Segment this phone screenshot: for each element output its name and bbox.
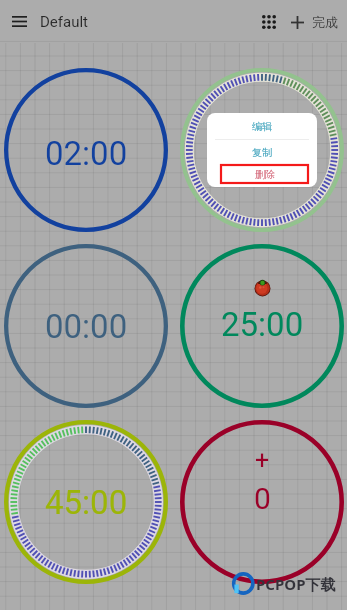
staticText: 复制	[252, 146, 272, 159]
staticText: +	[255, 446, 270, 475]
button[interactable]: 02:00	[4, 68, 168, 232]
button[interactable]: +	[180, 420, 344, 584]
staticText: 45:00	[45, 483, 128, 522]
staticText: 完成	[312, 14, 338, 30]
button[interactable]: 编辑	[180, 68, 344, 232]
staticText: 0	[254, 481, 271, 516]
staticText: 删除	[255, 168, 275, 181]
button[interactable]: Add timer	[284, 9, 310, 35]
staticText: PCPOP下载	[256, 574, 336, 594]
staticText: 02:00	[45, 134, 128, 173]
button[interactable]: 45:00	[4, 420, 168, 584]
staticText: 编辑	[252, 120, 272, 133]
staticText: 00:00	[45, 307, 128, 346]
button[interactable]: 25:00	[180, 244, 344, 408]
staticText: 25:00	[221, 305, 304, 344]
button[interactable]: 编辑	[207, 113, 317, 139]
button[interactable]: 00:00	[4, 244, 168, 408]
button[interactable]: 复制	[207, 140, 317, 164]
button[interactable]: Grid view	[254, 7, 284, 37]
button[interactable]: 删除	[221, 165, 308, 183]
button[interactable]: Menu	[4, 6, 35, 37]
staticText: Default	[40, 13, 88, 31]
button[interactable]: 完成	[312, 14, 338, 30]
